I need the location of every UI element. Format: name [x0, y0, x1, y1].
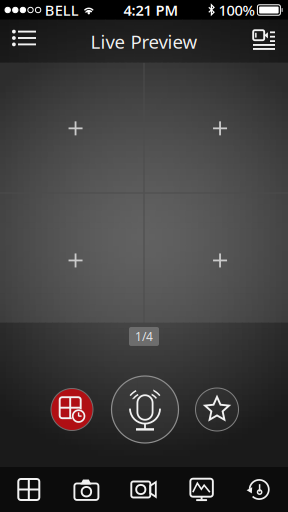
staticText: 1/4	[135, 328, 153, 344]
staticText: Live Preview	[90, 29, 197, 54]
button[interactable]: Live view	[173, 467, 230, 512]
button[interactable]: Add camera	[144, 63, 288, 192]
button[interactable]: Multi view	[0, 467, 58, 512]
button[interactable]: Snapshots	[58, 467, 115, 512]
button[interactable]: Push to talk	[107, 371, 183, 447]
button[interactable]: Add camera	[0, 193, 143, 323]
button[interactable]: Recordings	[115, 467, 173, 512]
staticText: 4:21 PM	[124, 0, 179, 20]
button[interactable]: Recordings	[241, 20, 288, 63]
button[interactable]: Scheduled recording	[46, 383, 98, 435]
staticText: 100%	[218, 0, 254, 20]
staticText: BELL	[45, 0, 79, 20]
button[interactable]: Add camera	[0, 63, 143, 192]
button[interactable]: Camera list	[0, 20, 47, 63]
button[interactable]: Add camera	[144, 193, 288, 323]
button[interactable]: Favourites	[191, 383, 243, 435]
button[interactable]: History	[230, 467, 288, 512]
